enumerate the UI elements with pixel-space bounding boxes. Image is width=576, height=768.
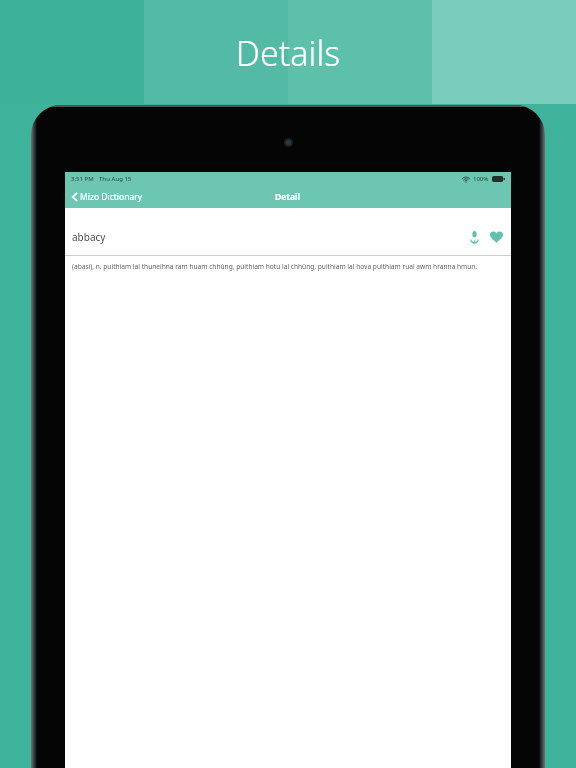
button[interactable]: Favorite [487,228,506,246]
staticText: (abasi), n. puithiam lal thuneihna ram h… [72,262,478,271]
staticText: Mizo Dictionary [80,191,142,203]
staticText: 3:51 PM [71,175,94,183]
button[interactable]: Pronounce [467,228,482,246]
staticText: Detail [275,191,301,203]
button[interactable]: Mizo Dictionary [70,188,144,206]
staticText: Thu Aug 15 [99,175,132,183]
staticText: abbacy [72,230,106,244]
staticText: 100% [473,175,489,183]
staticText: Details [0,30,576,76]
